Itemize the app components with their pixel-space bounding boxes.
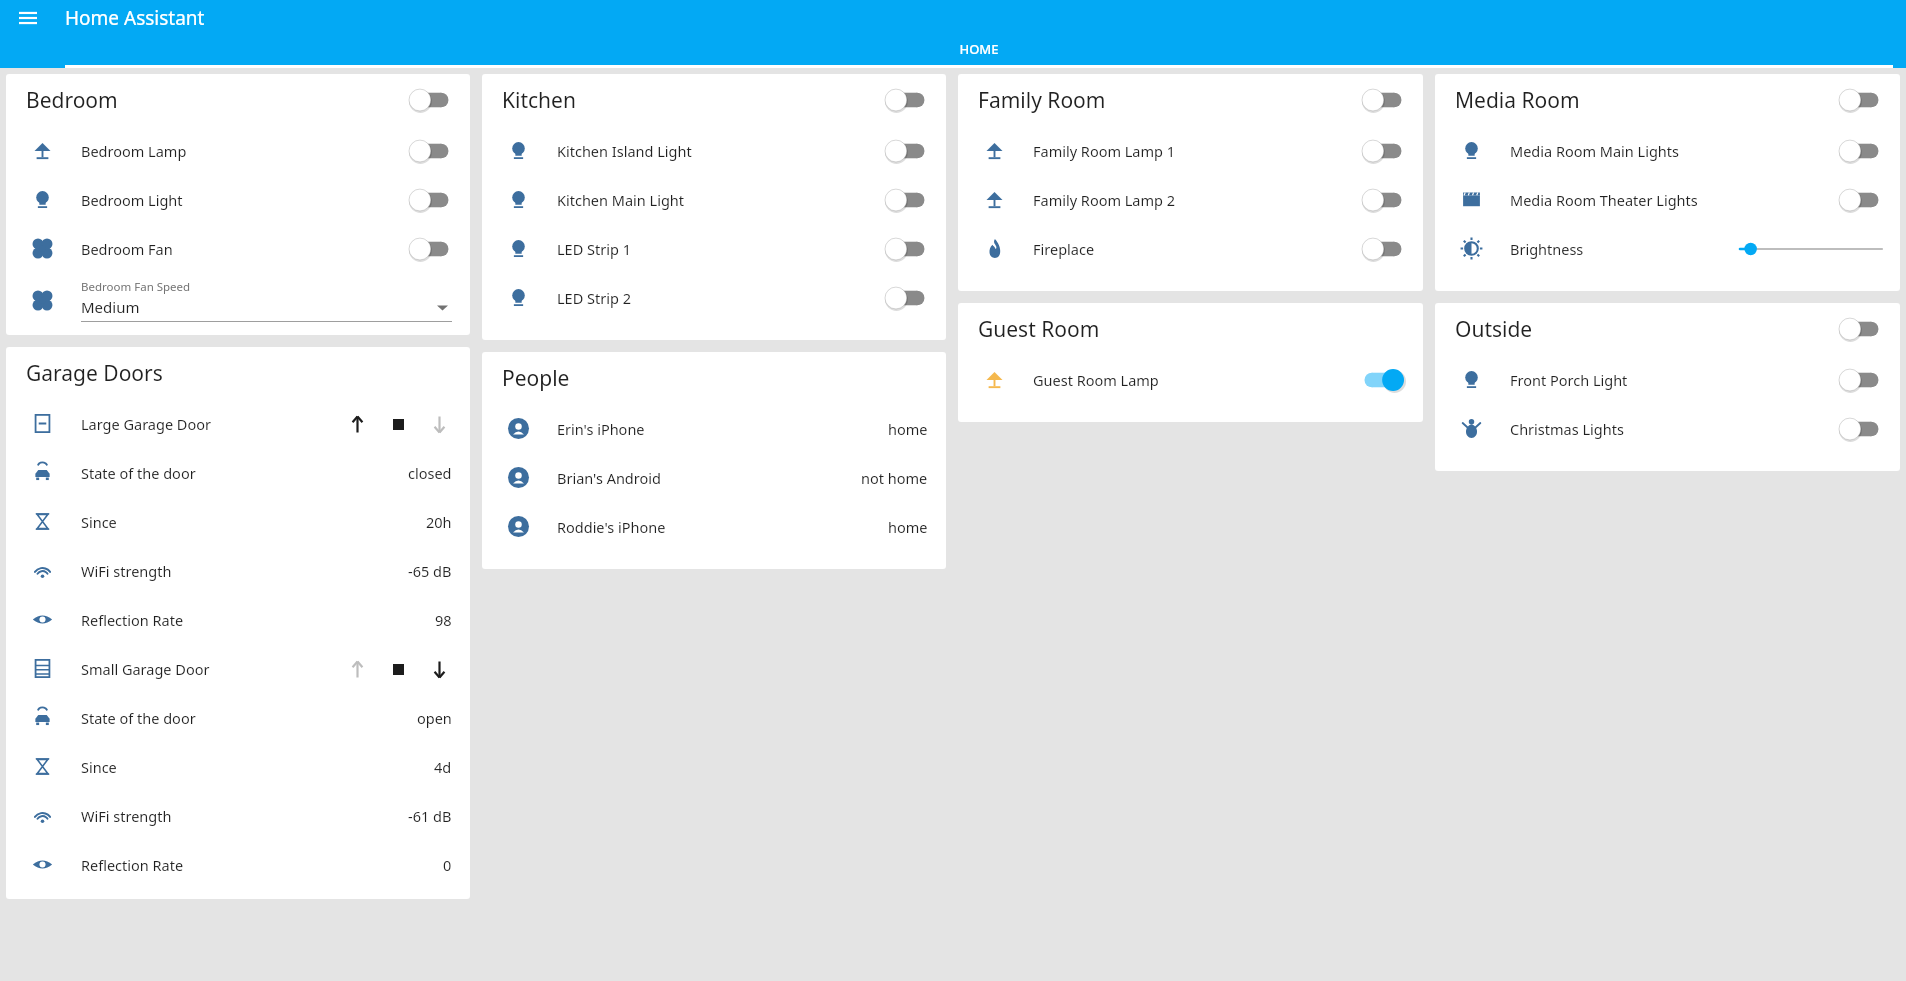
staticText: WiFi strength [81,561,172,581]
staticText: LED Strip 2 [557,288,631,308]
button[interactable]: Small Garage Door [6,644,470,693]
button[interactable]: Fireplace [958,224,1423,273]
button[interactable]: Toggle off [408,138,452,164]
button[interactable]: Toggle off [1838,367,1882,393]
staticText: not home [861,468,928,488]
staticText: Guest Room Lamp [1033,370,1159,390]
button[interactable]: Brightness slider [1740,236,1882,262]
button[interactable]: Toggle off [884,187,928,213]
button[interactable]: Brightness [1435,224,1900,273]
button[interactable]: Toggle off [1361,236,1405,262]
button[interactable]: Media Room Main Lights [1435,126,1900,175]
button[interactable]: HOME [52,40,1906,68]
staticText: Christmas Lights [1510,419,1624,439]
button[interactable]: Erin's iPhone [482,404,946,453]
staticText: Bedroom Light [81,190,183,210]
button[interactable]: Toggle off [1361,187,1405,213]
button[interactable]: Roddie's iPhone [482,502,946,551]
button[interactable]: Open Small Garage Door [340,652,374,686]
staticText: Fireplace [1033,239,1095,259]
staticText: Outside [1455,315,1533,344]
staticText: Small Garage Door [81,659,210,679]
button[interactable]: Toggle off [1838,187,1882,213]
button[interactable]: Toggle off [1838,416,1882,442]
button[interactable]: Toggle off [1838,138,1882,164]
button[interactable]: Family Room Lamp 1 [958,126,1423,175]
staticText: home [888,419,928,439]
staticText: HOME [959,40,999,58]
staticText: Media Room [1455,86,1580,115]
button[interactable]: Toggle off [1838,87,1882,113]
button[interactable]: Toggle off [884,285,928,311]
button[interactable]: Open navigation menu [14,4,42,32]
staticText: home [888,517,928,537]
button[interactable]: Since [6,497,470,546]
button[interactable]: Toggle off [884,236,928,262]
button[interactable]: Stop Large Garage Door [381,407,415,441]
staticText: Bedroom Fan Speed [81,279,191,295]
staticText: Home Assistant [65,5,205,31]
staticText: 98 [435,610,452,630]
staticText: Brian's Android [557,468,661,488]
button[interactable]: Toggle off [884,138,928,164]
button[interactable]: Close Large Garage Door [422,407,456,441]
button[interactable]: Large Garage Door [6,399,470,448]
staticText: Reflection Rate [81,610,184,630]
button[interactable]: Toggle off [1361,87,1405,113]
button[interactable]: WiFi strength [6,791,470,840]
button[interactable]: Guest Room Lamp [958,355,1423,404]
button[interactable]: Toggle on [1361,367,1405,393]
staticText: Kitchen Island Light [557,141,692,161]
staticText: Bedroom Fan [81,239,173,259]
staticText: Guest Room [978,315,1100,344]
button[interactable]: Brian's Android [482,453,946,502]
staticText: Large Garage Door [81,414,211,434]
button[interactable]: State of the door [6,693,470,742]
button[interactable]: Kitchen Island Light [482,126,946,175]
staticText: Family Room Lamp 2 [1033,190,1176,210]
staticText: Since [81,512,117,532]
staticText: 20h [426,512,452,532]
button[interactable]: Since [6,742,470,791]
staticText: LED Strip 1 [557,239,631,259]
button[interactable]: Bedroom Fan Speed [6,273,470,327]
staticText: State of the door [81,463,196,483]
button[interactable]: Bedroom Lamp [6,126,470,175]
button[interactable]: Kitchen Main Light [482,175,946,224]
button[interactable]: Family Room Lamp 2 [958,175,1423,224]
button[interactable]: Toggle off [1361,138,1405,164]
button[interactable]: WiFi strength [6,546,470,595]
staticText: Front Porch Light [1510,370,1628,390]
button[interactable]: Toggle off [884,87,928,113]
staticText: Garage Doors [26,359,163,388]
staticText: Family Room [978,86,1106,115]
button[interactable]: Toggle off [408,87,452,113]
staticText: -65 dB [408,561,452,581]
button[interactable]: Toggle off [1838,316,1882,342]
button[interactable]: Stop Small Garage Door [381,652,415,686]
staticText: People [502,364,570,393]
button[interactable]: Christmas Lights [1435,404,1900,453]
staticText: Since [81,757,117,777]
button[interactable]: Open Large Garage Door [340,407,374,441]
button[interactable]: Toggle off [408,236,452,262]
button[interactable]: Bedroom Light [6,175,470,224]
staticText: Brightness [1510,239,1584,259]
button[interactable]: Front Porch Light [1435,355,1900,404]
button[interactable]: State of the door [6,448,470,497]
staticText: Bedroom [26,86,118,115]
staticText: Reflection Rate [81,855,184,875]
button[interactable]: Toggle off [408,187,452,213]
button[interactable]: Reflection Rate [6,840,470,889]
button[interactable]: Bedroom Fan [6,224,470,273]
staticText: Kitchen [502,86,576,115]
staticText: Family Room Lamp 1 [1033,141,1176,161]
button[interactable]: Media Room Theater Lights [1435,175,1900,224]
button[interactable]: Close Small Garage Door [422,652,456,686]
staticText: WiFi strength [81,806,172,826]
button[interactable]: LED Strip 1 [482,224,946,273]
staticText: Medium [81,297,140,317]
button[interactable]: Reflection Rate [6,595,470,644]
button[interactable]: LED Strip 2 [482,273,946,322]
staticText: -61 dB [408,806,452,826]
